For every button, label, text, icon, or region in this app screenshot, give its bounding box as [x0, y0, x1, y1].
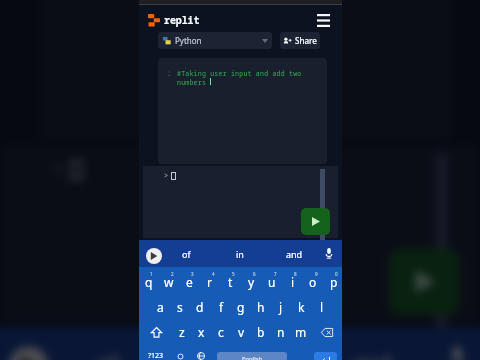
button[interactable]: Voice input	[433, 327, 480, 360]
staticText: Python	[175, 35, 202, 46]
button[interactable]: h	[251, 294, 271, 319]
staticText: n	[277, 324, 285, 340]
staticText: v	[238, 324, 245, 340]
staticText: d	[196, 299, 204, 315]
button[interactable]: Change language	[191, 347, 211, 360]
staticText: y	[248, 274, 255, 290]
staticText: u	[268, 274, 276, 290]
staticText: x	[198, 324, 205, 340]
staticText: 0	[335, 271, 338, 277]
button[interactable]: 1	[158, 58, 327, 164]
staticText: replit	[164, 13, 200, 27]
button[interactable]: Menu	[312, 9, 334, 31]
button[interactable]: of	[166, 240, 206, 267]
staticText: 4	[212, 271, 215, 277]
staticText: a	[157, 299, 164, 315]
button[interactable]: z	[172, 319, 192, 344]
button[interactable]: e	[179, 269, 200, 294]
staticText: o	[309, 274, 317, 290]
staticText: of	[182, 248, 191, 260]
staticText: 9	[315, 271, 318, 277]
staticText: 1	[163, 69, 171, 78]
button[interactable]: ?123	[144, 347, 168, 360]
staticText: p	[330, 274, 338, 290]
staticText: 5	[232, 271, 235, 277]
button[interactable]: s	[170, 294, 190, 319]
staticText: in	[236, 248, 244, 260]
staticText: c	[218, 324, 224, 340]
staticText: 8	[294, 271, 297, 277]
staticText: m	[295, 324, 307, 340]
button[interactable]: in	[220, 240, 260, 267]
button[interactable]: Shift	[142, 320, 170, 345]
button[interactable]: Google search	[146, 248, 162, 264]
staticText: in	[229, 347, 249, 360]
staticText: e	[186, 274, 193, 290]
staticText: and	[352, 347, 394, 360]
staticText: i	[291, 274, 295, 290]
button[interactable]: y	[241, 269, 262, 294]
staticText: 6	[253, 271, 256, 277]
button[interactable]: English	[217, 352, 287, 360]
button[interactable]: u	[261, 269, 282, 294]
button[interactable]: v	[231, 319, 251, 344]
staticText: 7	[274, 271, 277, 277]
staticText: 2	[171, 271, 174, 277]
staticText: j	[279, 299, 283, 315]
staticText: and	[286, 248, 303, 260]
button[interactable]: in	[190, 327, 288, 360]
staticText: #Taking user input and add two numbers	[177, 69, 317, 87]
button[interactable]: j	[271, 294, 291, 319]
button[interactable]: a	[150, 294, 170, 319]
button[interactable]: and	[274, 240, 314, 267]
button[interactable]: x	[191, 319, 211, 344]
staticText: k	[298, 299, 305, 315]
staticText: t	[228, 274, 233, 290]
staticText: f	[219, 299, 224, 315]
button[interactable]: 1	[38, 0, 452, 141]
button[interactable]: Emoji	[170, 347, 190, 360]
staticText: r	[207, 274, 212, 290]
button[interactable]: q	[138, 269, 159, 294]
button[interactable]: l	[312, 294, 332, 319]
button[interactable]: c	[211, 319, 231, 344]
staticText: of	[97, 347, 119, 360]
staticText: ?123	[148, 351, 164, 360]
button[interactable]: r	[199, 269, 220, 294]
staticText: z	[179, 324, 185, 340]
staticText: s	[177, 299, 183, 315]
button[interactable]: of	[58, 327, 156, 360]
button[interactable]: Share	[280, 32, 320, 49]
button[interactable]: Run	[301, 208, 330, 235]
button[interactable]: Backspace	[313, 320, 341, 345]
button[interactable]: g	[231, 294, 251, 319]
button[interactable]: Run	[389, 249, 460, 315]
button[interactable]: Google search	[9, 347, 48, 360]
button[interactable]: t	[220, 269, 241, 294]
button[interactable]: and	[323, 327, 421, 360]
button[interactable]: o	[302, 269, 323, 294]
staticText: Share	[295, 35, 317, 46]
button[interactable]: Enter	[314, 352, 337, 360]
staticText: g	[237, 299, 245, 315]
button[interactable]: Python	[158, 32, 272, 49]
button[interactable]: w	[158, 269, 179, 294]
button[interactable]: i	[282, 269, 303, 294]
button[interactable]: m	[291, 319, 311, 344]
button[interactable]: d	[190, 294, 210, 319]
staticText: 1	[150, 271, 153, 277]
button[interactable]: n	[271, 319, 291, 344]
staticText: w	[164, 274, 174, 290]
button[interactable]: p	[323, 269, 344, 294]
button[interactable]: f	[211, 294, 231, 319]
staticText: 3	[191, 271, 194, 277]
button[interactable]: b	[251, 319, 271, 344]
button[interactable]: Voice input	[319, 240, 339, 267]
staticText: h	[257, 299, 265, 315]
staticText: >	[164, 171, 169, 181]
button[interactable]: k	[291, 294, 311, 319]
staticText: b	[257, 324, 265, 340]
staticText: q	[145, 274, 153, 290]
staticText: l	[320, 299, 324, 315]
